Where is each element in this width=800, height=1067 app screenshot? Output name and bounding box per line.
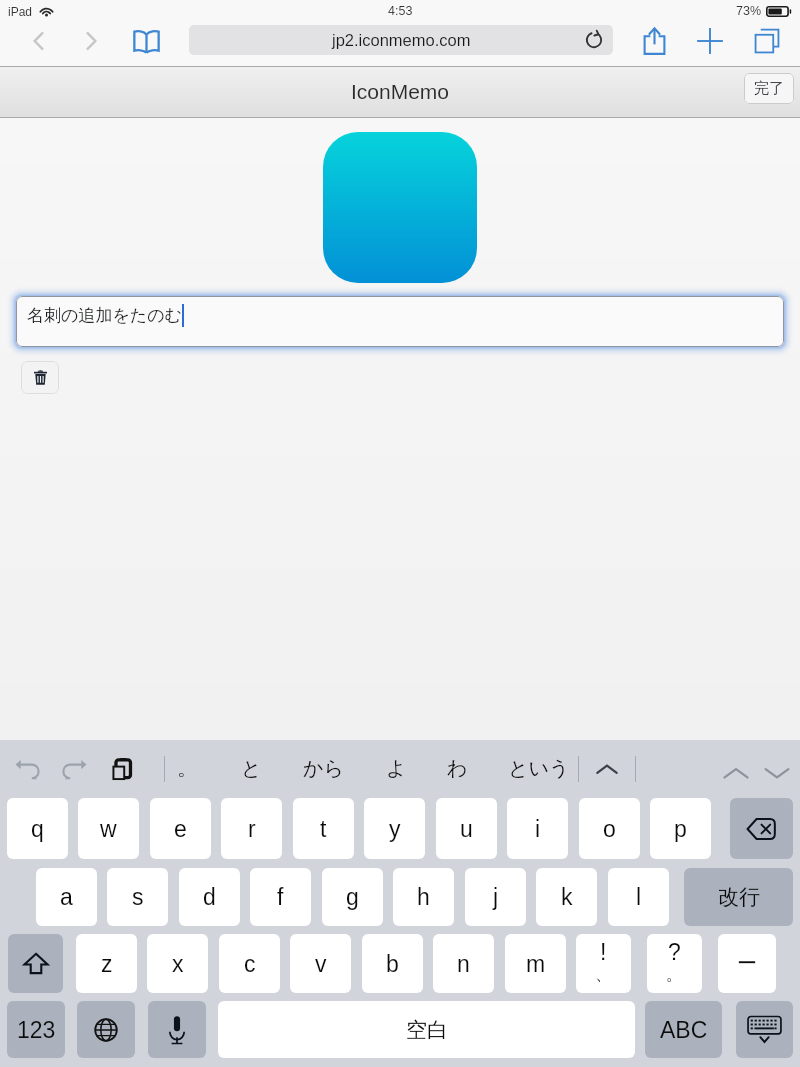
button[interactable]: 空白 [218,1001,635,1058]
staticText: わ [447,756,468,781]
button[interactable]: Paste [108,754,138,784]
staticText: 完了 [754,79,784,98]
button[interactable]: j [465,868,526,926]
staticText: 。 [177,756,197,781]
button[interactable]: Redo [58,752,92,786]
button[interactable]: ー [718,934,776,993]
staticText: z [101,951,113,977]
staticText: と [241,756,262,781]
staticText: i [535,816,541,842]
button[interactable]: p [650,798,711,859]
button[interactable]: e [150,798,211,859]
button[interactable]: jp2.iconmemo.com [189,25,613,55]
button[interactable]: u [436,798,497,859]
button[interactable]: Change language [77,1001,135,1058]
staticText: ABC [660,1017,708,1043]
button[interactable]: Tabs [750,24,784,58]
button[interactable]: b [362,934,423,993]
staticText: ! [600,939,607,965]
button[interactable]: c [219,934,280,993]
staticText: m [526,951,546,977]
staticText: e [174,816,187,842]
button[interactable]: g [322,868,383,926]
button[interactable]: Bookmarks [129,24,163,58]
button[interactable]: 123 [7,1001,65,1058]
button[interactable] [323,132,477,283]
button[interactable]: Shift [8,934,63,993]
button[interactable]: f [250,868,311,926]
button[interactable]: Collapse suggestions [587,749,627,789]
button[interactable]: v [290,934,351,993]
button[interactable]: 完了 [744,73,794,104]
staticText: iPad [8,5,33,18]
staticText: q [31,816,44,842]
button[interactable]: y [364,798,425,859]
button[interactable]: Backspace [730,798,793,859]
staticText: jp2.iconmemo.com [332,31,471,49]
staticText: c [244,951,256,977]
staticText: g [346,884,359,910]
staticText: u [460,816,473,842]
staticText: t [320,816,327,842]
button[interactable]: ? [647,934,702,993]
button[interactable]: d [179,868,240,926]
button[interactable]: q [7,798,68,859]
button[interactable]: ABC [645,1001,722,1058]
staticText: s [132,884,144,910]
button[interactable]: と [225,745,277,791]
button[interactable]: x [147,934,208,993]
staticText: 123 [17,1017,56,1043]
button[interactable]: t [293,798,354,859]
staticText: 名刺の追加をたのむ [27,305,182,326]
button[interactable]: i [507,798,568,859]
staticText: a [60,884,73,910]
button[interactable]: h [393,868,454,926]
staticText: 73% [736,4,762,18]
staticText: 、 [595,964,612,985]
staticText: 4:53 [388,4,413,18]
button[interactable]: わ [431,745,483,791]
staticText: b [386,951,399,977]
button[interactable]: という [503,745,575,791]
button[interactable]: n [433,934,494,993]
button[interactable]: m [505,934,566,993]
button[interactable]: New tab [693,24,727,58]
staticText: ? [668,939,681,965]
staticText: o [603,816,616,842]
staticText: x [172,951,184,977]
button[interactable]: l [608,868,669,926]
staticText: ー [737,951,757,976]
staticText: という [508,756,570,781]
button[interactable]: z [76,934,137,993]
staticText: n [457,951,470,977]
button[interactable]: r [221,798,282,859]
staticText: f [277,884,284,910]
staticText: h [417,884,430,910]
button[interactable]: o [579,798,640,859]
staticText: よ [386,756,407,781]
button[interactable]: 改行 [684,868,793,926]
staticText: から [303,756,344,781]
staticText: j [493,884,499,910]
button[interactable]: Previous field [719,756,753,790]
button[interactable]: Dictation [148,1001,206,1058]
button[interactable]: ! [576,934,631,993]
button[interactable]: から [294,745,352,791]
button[interactable]: s [107,868,168,926]
button[interactable]: a [36,868,97,926]
button[interactable]: k [536,868,597,926]
staticText: d [203,884,216,910]
button[interactable]: Undo [10,752,44,786]
button[interactable]: Hide keyboard [736,1001,793,1058]
button[interactable]: Next field [760,756,794,790]
button[interactable]: w [78,798,139,859]
button[interactable]: Back [22,24,56,58]
button[interactable]: Share [637,24,671,58]
button[interactable]: Delete [21,361,59,394]
button[interactable]: 名刺の追加をたのむ [16,296,784,347]
button[interactable]: よ [370,745,422,791]
staticText: IconMemo [351,80,450,103]
staticText: r [248,816,256,842]
button[interactable]: Forward [74,24,108,58]
button[interactable]: 。 [161,745,213,791]
